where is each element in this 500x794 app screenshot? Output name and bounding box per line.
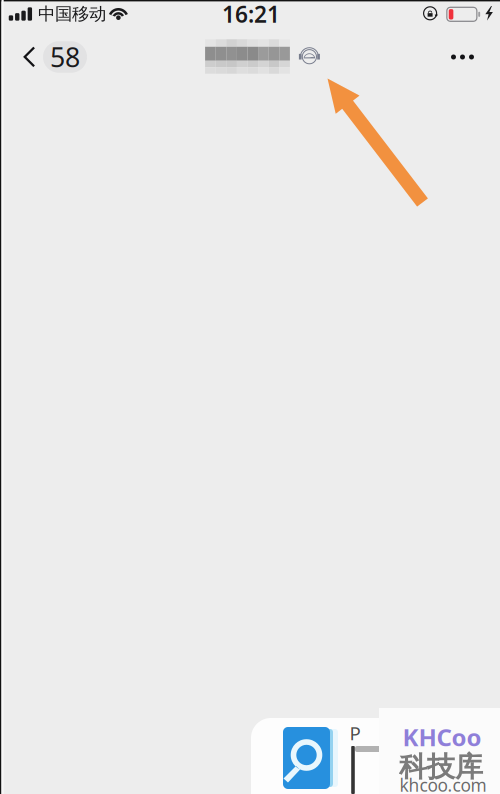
button[interactable]: Back, 58 bbox=[14, 35, 95, 79]
staticText: 16:21 bbox=[222, 0, 280, 29]
staticText: P bbox=[349, 721, 360, 745]
staticText: 58 bbox=[50, 39, 80, 75]
staticText: KHCoo bbox=[402, 721, 481, 753]
staticText: khcoo.com bbox=[399, 773, 486, 794]
button[interactable]: More bbox=[435, 36, 489, 78]
staticText: 中国移动 bbox=[38, 3, 106, 25]
staticText: 科技库 bbox=[399, 750, 483, 784]
button[interactable]: Chat title bbox=[205, 35, 320, 78]
